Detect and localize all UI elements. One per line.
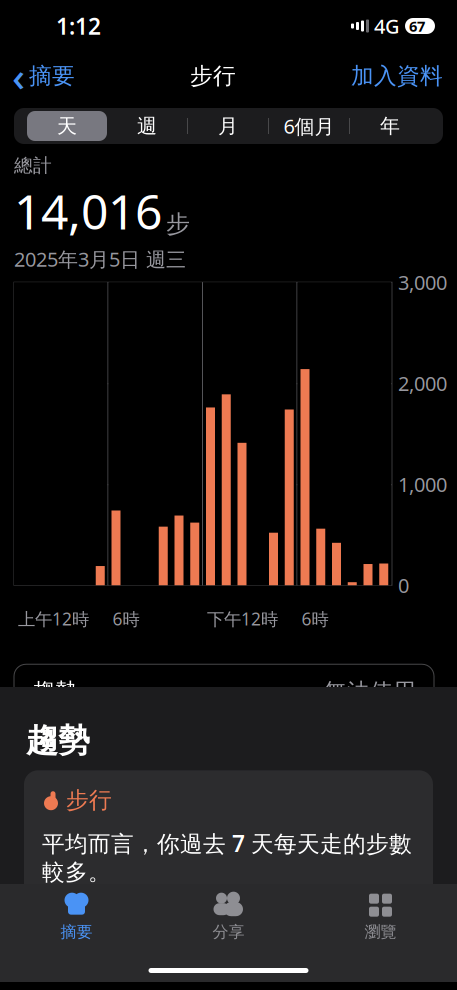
staticText: 1,000 (398, 471, 447, 498)
staticText: 月 (218, 114, 238, 138)
button[interactable]: 瀏覽 (304, 892, 456, 942)
staticText: 2,000 (398, 370, 447, 397)
staticText: 1:12 (56, 11, 101, 41)
staticText: 步 (166, 209, 190, 239)
staticText: 週 (137, 114, 157, 138)
staticText: 6時 (301, 607, 328, 630)
staticText: 趨勢 (26, 721, 90, 760)
staticText: 3,000 (398, 269, 447, 296)
staticText: 步行 (66, 786, 112, 814)
staticText: 瀏覽 (364, 922, 396, 942)
button[interactable]: 月 (188, 111, 268, 141)
staticText: 分享 (212, 922, 244, 942)
staticText: 6時 (112, 607, 139, 630)
button[interactable]: 摘要 (0, 892, 152, 942)
staticText: 6個月 (283, 113, 334, 139)
staticText: 4G (374, 13, 400, 39)
button[interactable]: 天 (27, 111, 107, 141)
staticText: 加入資料 (351, 62, 443, 90)
staticText: 上午12時 (18, 607, 89, 630)
staticText: 趨勢 (32, 678, 78, 706)
staticText: ‹ (12, 49, 25, 102)
button[interactable]: 年 (350, 111, 430, 141)
button[interactable]: ‹ (0, 56, 75, 96)
staticText: 平均而言，你過去 7 天每天走的步數較多。 (42, 828, 412, 886)
staticText: 摘要 (29, 62, 75, 90)
staticText: 無法使用 (324, 678, 416, 706)
button[interactable]: 週 (107, 111, 187, 141)
staticText: 總計 (14, 154, 52, 177)
staticText: 年 (380, 114, 400, 138)
staticText: 0 (398, 572, 409, 599)
staticText: 摘要 (60, 922, 92, 942)
button[interactable]: 分享 (152, 892, 304, 942)
staticText: 天 (57, 114, 77, 138)
staticText: 2025年3月5日 週三 (14, 246, 186, 272)
button[interactable]: 加入資料 (351, 56, 457, 96)
button[interactable]: 6個月 (269, 111, 349, 141)
staticText: 14,016 (14, 179, 162, 243)
button[interactable]: 趨勢 (14, 664, 434, 719)
staticText: 下午12時 (207, 607, 278, 630)
staticText: 67 (409, 16, 425, 36)
staticText: 步行 (190, 62, 236, 90)
